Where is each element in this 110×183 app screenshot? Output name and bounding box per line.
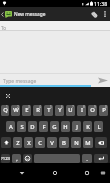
button[interactable]: Backspace xyxy=(95,137,107,148)
staticText: 9 xyxy=(94,105,96,109)
button[interactable]: G xyxy=(50,121,59,132)
staticText: To xyxy=(1,25,7,31)
button[interactable]: Home xyxy=(50,163,59,183)
staticText: K xyxy=(86,123,90,131)
staticText: G xyxy=(52,123,57,131)
button[interactable]: New message xyxy=(14,11,46,18)
button[interactable]: Enter xyxy=(94,154,108,163)
staticText: P xyxy=(102,106,106,114)
staticText: R xyxy=(36,106,40,114)
button[interactable]: L xyxy=(94,121,103,132)
button[interactable]: Send xyxy=(95,73,110,87)
staticText: U xyxy=(68,106,73,114)
staticText: 8 xyxy=(83,105,85,109)
staticText: S xyxy=(20,123,24,131)
staticText: W xyxy=(13,106,19,114)
staticText: V xyxy=(50,139,54,147)
staticText: , xyxy=(16,155,18,163)
button[interactable]: , xyxy=(12,154,21,163)
button[interactable]: Recents xyxy=(82,163,91,183)
staticText: 7 xyxy=(72,105,74,109)
staticText: 5 xyxy=(50,105,52,109)
button[interactable]: Back xyxy=(17,163,26,183)
staticText: F xyxy=(42,123,46,131)
button[interactable]: 8 xyxy=(77,105,86,116)
button[interactable]: F xyxy=(39,121,48,132)
staticText: M xyxy=(85,139,91,147)
button[interactable]: V xyxy=(47,137,57,148)
button[interactable]: N xyxy=(71,137,81,148)
button[interactable]: Z xyxy=(13,137,22,148)
staticText: 2 xyxy=(17,105,19,109)
staticText: C xyxy=(38,139,42,147)
button[interactable]: A xyxy=(6,121,15,132)
staticText: E xyxy=(25,106,29,114)
button[interactable]: 0 xyxy=(99,105,108,116)
button[interactable]: 2 xyxy=(11,105,20,116)
button[interactable]: C xyxy=(35,137,45,148)
staticText: . xyxy=(86,155,88,163)
button[interactable]: ?123 xyxy=(1,154,10,163)
staticText: H xyxy=(63,123,68,131)
button[interactable]: 9 xyxy=(88,105,97,116)
staticText: 1 xyxy=(6,105,8,109)
button[interactable]: 5 xyxy=(44,105,53,116)
button[interactable]: Space xyxy=(34,154,80,163)
button[interactable]: Navigate up xyxy=(0,7,12,21)
button[interactable]: J xyxy=(72,121,81,132)
staticText: X xyxy=(27,139,31,147)
button[interactable]: . xyxy=(82,154,92,163)
button[interactable]: Switch keyboard xyxy=(98,163,107,183)
button[interactable]: More options xyxy=(100,7,109,21)
staticText: Type message xyxy=(3,78,37,85)
button[interactable]: 4 xyxy=(33,105,42,116)
button[interactable]: Attach xyxy=(89,7,100,21)
staticText: 6 xyxy=(61,105,63,109)
staticText: Y xyxy=(58,106,62,114)
button[interactable]: 6 xyxy=(55,105,64,116)
button[interactable]: 3 xyxy=(22,105,31,116)
button[interactable]: 7 xyxy=(66,105,75,116)
staticText: 3 xyxy=(28,105,30,109)
button[interactable]: Input method options xyxy=(5,93,11,99)
button[interactable]: B xyxy=(59,137,69,148)
staticText: 11:38 xyxy=(94,0,108,7)
staticText: J xyxy=(76,123,78,131)
button[interactable]: 1 xyxy=(1,105,9,116)
button[interactable]: Emoji xyxy=(23,154,32,163)
button[interactable]: M xyxy=(83,137,93,148)
staticText: 4 xyxy=(39,105,41,109)
staticText: D xyxy=(30,123,35,131)
button[interactable]: H xyxy=(61,121,70,132)
button[interactable]: S xyxy=(17,121,26,132)
button[interactable]: D xyxy=(28,121,37,132)
staticText: B xyxy=(62,139,66,147)
staticText: T xyxy=(47,106,51,114)
staticText: I xyxy=(81,106,83,114)
button[interactable]: Shift xyxy=(1,137,11,148)
staticText: Q xyxy=(3,106,8,114)
staticText: L xyxy=(97,123,101,131)
staticText: N xyxy=(74,139,79,147)
staticText: Z xyxy=(16,139,20,147)
button[interactable]: K xyxy=(83,121,92,132)
staticText: A xyxy=(9,123,13,131)
staticText: 0 xyxy=(105,105,107,109)
staticText: O xyxy=(90,106,95,114)
button[interactable]: X xyxy=(24,137,33,148)
staticText: ?123 xyxy=(1,156,10,162)
